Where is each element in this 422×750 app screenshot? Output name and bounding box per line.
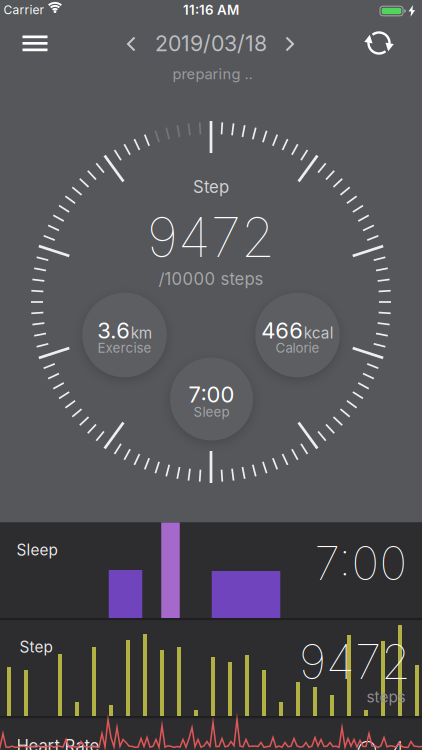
staticText: 9472 xyxy=(147,204,275,270)
staticText: kcal xyxy=(304,324,334,342)
staticText: Exercise xyxy=(97,340,151,356)
staticText: Step xyxy=(19,638,52,656)
staticText: 64 xyxy=(353,729,409,750)
button[interactable]: 3.6 xyxy=(82,293,167,377)
button[interactable]: Sync xyxy=(364,28,394,58)
staticText: 466 xyxy=(261,317,303,344)
staticText: km xyxy=(131,324,152,342)
staticText: 7:00 xyxy=(188,381,234,408)
button[interactable]: 466 xyxy=(255,293,340,377)
button[interactable]: 7:00 xyxy=(170,357,253,440)
staticText: Step xyxy=(193,177,229,197)
staticText: 3.6 xyxy=(97,317,130,344)
staticText: preparing .. xyxy=(172,65,252,83)
staticText: /10000 steps xyxy=(158,269,263,289)
staticText: Sleep xyxy=(193,404,229,420)
button[interactable]: Sleep xyxy=(0,0,422,750)
button[interactable]: Next day xyxy=(285,36,294,51)
button[interactable]: Previous day xyxy=(126,36,135,51)
button[interactable]: Menu xyxy=(22,35,47,51)
staticText: Calorie xyxy=(275,340,319,356)
staticText: Carrier xyxy=(3,3,44,17)
staticText: 11:16 AM xyxy=(183,2,239,18)
staticText: steps xyxy=(366,688,405,706)
staticText: Heart Rate xyxy=(16,736,99,750)
staticText: Sleep xyxy=(16,541,57,559)
staticText: 2019/03/18 xyxy=(155,31,267,56)
button[interactable]: 2019/03/18 xyxy=(155,31,267,56)
staticText: 7:00 xyxy=(314,535,407,591)
staticText: 9472 xyxy=(299,632,411,691)
button[interactable]: Step xyxy=(0,0,422,750)
button[interactable]: Heart Rate xyxy=(0,0,422,750)
